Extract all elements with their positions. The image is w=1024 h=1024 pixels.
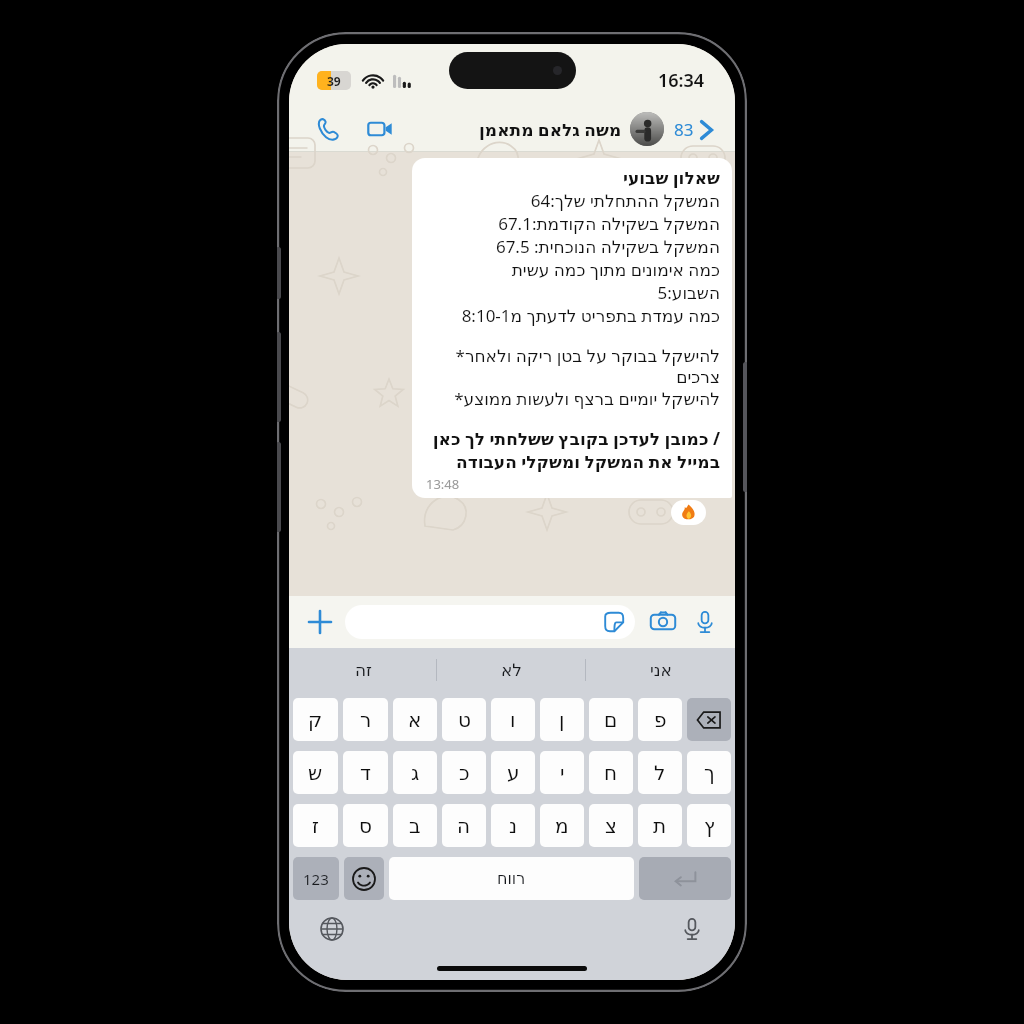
button[interactable]: ע — [491, 751, 535, 794]
staticText: *להישקל יומיים ברצף ולעשות ממוצע — [426, 387, 720, 410]
button[interactable]: כ — [442, 751, 486, 794]
button[interactable]: ג — [393, 751, 437, 794]
button[interactable]: Backspace — [687, 698, 731, 741]
button[interactable]: א — [393, 698, 437, 741]
button[interactable]: Back to chats, 83 unread — [674, 118, 713, 141]
staticText: צ — [605, 814, 617, 837]
staticText: ד — [360, 761, 371, 784]
staticText: צרכים — [426, 367, 720, 387]
staticText: ש — [308, 761, 323, 784]
button[interactable]: אני — [586, 648, 735, 692]
button[interactable]: ר — [343, 698, 388, 741]
staticText: כמובן לעדכן בקובץ ששלחתי לך כאן / — [426, 427, 720, 450]
staticText: ס — [359, 814, 372, 837]
button[interactable]: שאלון שבועי — [412, 158, 732, 498]
staticText: המשקל בשקילה הנוכחית: 67.5 — [426, 235, 720, 258]
button[interactable]: Camera — [647, 606, 679, 638]
staticText: ב — [409, 814, 421, 837]
staticText: המשקל בשקילה הקודמת:67.1 — [426, 212, 720, 235]
button[interactable]: Return — [639, 857, 731, 900]
button[interactable]: צ — [589, 804, 633, 847]
staticText: ט — [458, 708, 471, 731]
button[interactable]: ץ — [687, 804, 731, 847]
button[interactable]: ש — [293, 751, 338, 794]
button[interactable]: ט — [442, 698, 486, 741]
staticText: אני — [650, 660, 672, 680]
button[interactable]: 123 — [293, 857, 339, 900]
staticText: ץ — [704, 814, 715, 837]
button[interactable]: רווח — [389, 857, 634, 900]
staticText: רווח — [497, 869, 526, 888]
button[interactable]: מ — [540, 804, 584, 847]
button[interactable]: Emoji — [344, 857, 384, 900]
button[interactable]: נ — [491, 804, 535, 847]
button[interactable]: Attach — [303, 605, 337, 639]
staticText: לא — [501, 660, 523, 680]
button[interactable]: ו — [491, 698, 535, 741]
button[interactable]: ם — [589, 698, 633, 741]
staticText: ת — [653, 814, 667, 837]
staticText: נ — [509, 814, 518, 837]
staticText: ה — [457, 814, 471, 837]
button[interactable]: ל — [638, 751, 682, 794]
staticText: משה גלאם מתאמן — [479, 118, 622, 141]
button[interactable]: Voice call — [311, 112, 345, 146]
button[interactable]: ח — [589, 751, 633, 794]
button[interactable]: Change keyboard — [315, 912, 349, 946]
staticText: כמה אימונים מתוך כמה עשית — [426, 258, 720, 281]
button[interactable]: Dictation — [675, 912, 709, 946]
staticText: ר — [360, 708, 372, 731]
staticText: 13:48 — [426, 475, 460, 493]
staticText: ע — [507, 761, 520, 784]
staticText: א — [408, 708, 422, 731]
staticText: 16:34 — [658, 68, 705, 93]
button[interactable]: זה — [289, 648, 437, 692]
button[interactable]: פ — [638, 698, 682, 741]
staticText: ז — [312, 814, 319, 837]
staticText: במייל את המשקל ומשקלי העבודה — [426, 450, 720, 473]
button[interactable]: ק — [293, 698, 338, 741]
staticText: 123 — [303, 869, 329, 889]
staticText: *להישקל בבוקר על בטן ריקה ולאחר — [426, 344, 720, 367]
button[interactable]: Video call — [363, 112, 397, 146]
staticText: ם — [604, 708, 618, 731]
staticText: פ — [654, 708, 667, 731]
staticText: 39 — [327, 73, 341, 89]
button[interactable]: לא — [437, 648, 586, 692]
button[interactable]: י — [540, 751, 584, 794]
button[interactable]: ס — [343, 804, 388, 847]
staticText: ן — [559, 708, 565, 731]
staticText: ח — [604, 761, 618, 784]
button[interactable]: ת — [638, 804, 682, 847]
button[interactable] — [345, 605, 635, 639]
staticText: כמה עמדת בתפריט לדעתך מ8:10-1 — [426, 304, 720, 327]
button[interactable]: ן — [540, 698, 584, 741]
button[interactable]: ב — [393, 804, 437, 847]
button[interactable]: ך — [687, 751, 731, 794]
staticText: מ — [555, 814, 569, 837]
staticText: כ — [459, 761, 470, 784]
staticText: המשקל ההתחלתי שלך:64 — [426, 189, 720, 212]
staticText: זה — [355, 660, 372, 680]
staticText: י — [560, 761, 565, 784]
button[interactable]: ד — [343, 751, 388, 794]
staticText: ג — [411, 761, 420, 784]
button[interactable]: ז — [293, 804, 338, 847]
staticText: ל — [654, 761, 666, 784]
button[interactable]: Fire reaction — [671, 500, 706, 525]
staticText: 83 — [674, 118, 694, 141]
staticText: שאלון שבועי — [426, 166, 720, 189]
button[interactable]: משה גלאם מתאמן — [479, 112, 664, 146]
staticText: ו — [510, 708, 516, 731]
staticText: ק — [308, 708, 323, 731]
button[interactable]: Voice message — [689, 606, 721, 638]
staticText: ך — [704, 761, 715, 784]
button[interactable]: ה — [442, 804, 486, 847]
staticText: השבוע:5 — [426, 281, 720, 304]
